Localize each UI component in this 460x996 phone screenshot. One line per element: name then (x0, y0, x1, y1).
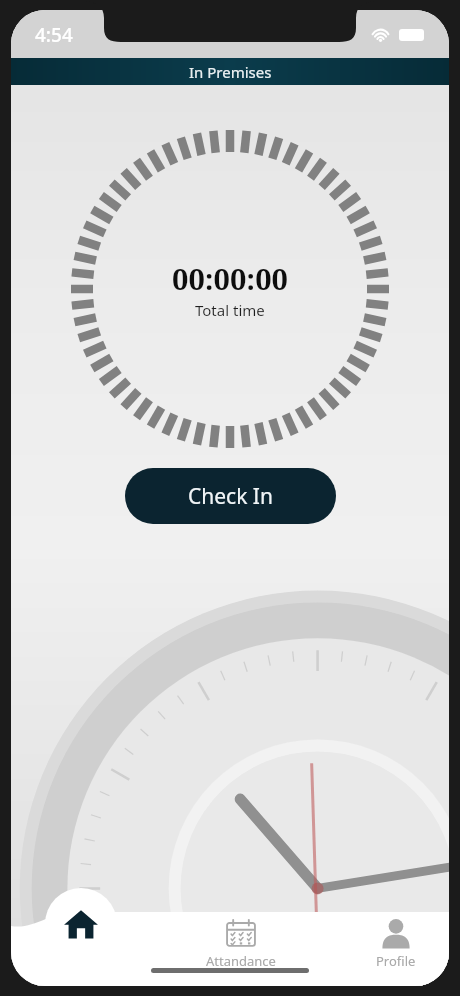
staticText: Total time (195, 300, 265, 320)
staticText: In Premises (189, 62, 272, 82)
staticText: Check In (188, 482, 273, 511)
staticText: Profile (376, 952, 416, 970)
staticText: Attandance (206, 952, 276, 970)
button[interactable]: Check In (125, 468, 336, 524)
button[interactable]: Home (45, 888, 117, 960)
button[interactable]: Profile (321, 918, 449, 970)
staticText: 00:00:00 (172, 259, 288, 298)
button[interactable]: Attandance (161, 918, 321, 970)
staticText: 4:54 (35, 22, 73, 48)
